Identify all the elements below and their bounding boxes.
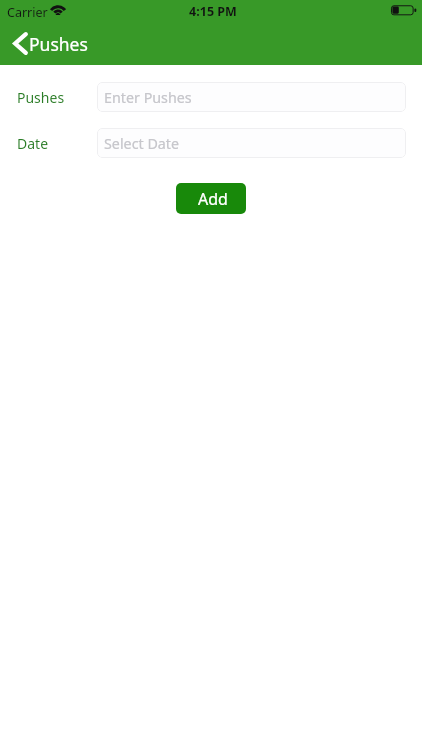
staticText: Add: [198, 188, 228, 210]
staticText: Enter Pushes: [104, 88, 192, 107]
staticText: Date: [17, 134, 49, 153]
staticText: 4:15 PM: [2, 3, 422, 20]
other: Battery: [391, 5, 417, 16]
staticText: Pushes: [17, 88, 65, 107]
other: Wi-Fi signal: [50, 4, 66, 16]
staticText: Select Date: [104, 134, 180, 153]
button[interactable]: Add: [176, 183, 246, 214]
staticText: Pushes: [29, 32, 88, 56]
staticText: Carrier: [7, 4, 48, 21]
button[interactable]: Select Date: [97, 128, 406, 158]
button[interactable]: Back: [0, 22, 88, 65]
button[interactable]: Enter Pushes: [97, 82, 406, 112]
